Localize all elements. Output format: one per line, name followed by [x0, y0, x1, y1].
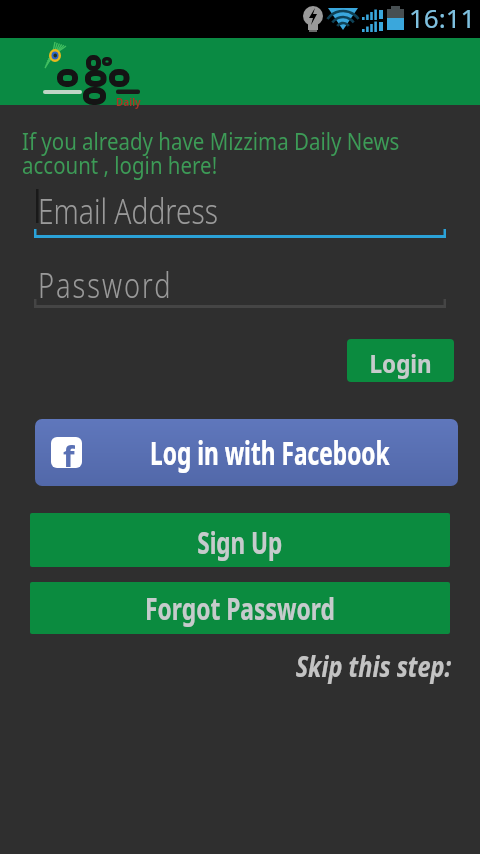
staticText: Login — [369, 346, 432, 380]
staticText: Log in with Facebook — [150, 431, 390, 475]
staticText: Password — [38, 262, 173, 308]
button[interactable]: Forgot Password — [30, 582, 450, 634]
button[interactable]: Sign Up — [30, 513, 450, 567]
staticText: Daily — [116, 94, 141, 109]
staticText: If you already have Mizzima Daily News a… — [22, 125, 399, 181]
button[interactable]: Skip this step: — [259, 646, 452, 685]
staticText: Email Address — [38, 188, 218, 234]
staticText: Sign Up — [197, 522, 283, 563]
staticText: f — [63, 437, 75, 467]
button[interactable]: Email Address — [34, 186, 446, 242]
button[interactable]: Password — [34, 260, 446, 316]
button[interactable]: Login — [347, 339, 454, 382]
staticText: Forgot Password — [145, 588, 335, 629]
staticText: 16:11 — [409, 0, 476, 35]
button[interactable]: f — [35, 419, 458, 486]
